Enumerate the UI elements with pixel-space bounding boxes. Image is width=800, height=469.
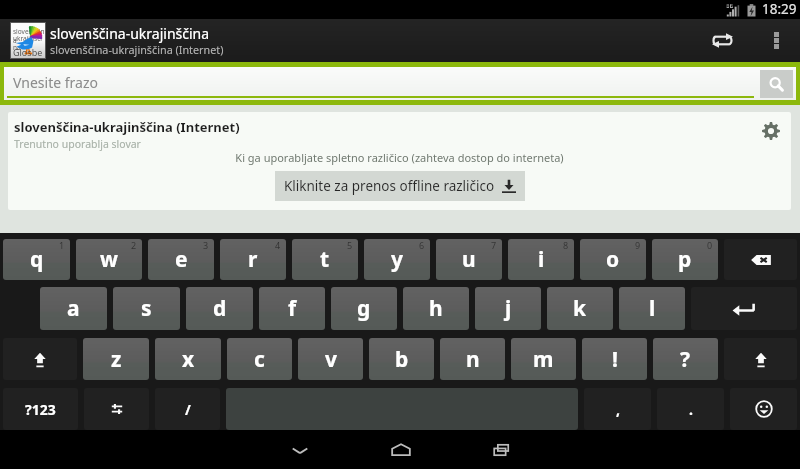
staticText: , xyxy=(616,400,620,419)
button[interactable]: Recent apps xyxy=(451,430,552,469)
button[interactable]: b xyxy=(369,338,434,380)
staticText: e xyxy=(175,245,188,274)
staticText: slovenščina-ukrajinščina (Internet) xyxy=(50,42,224,57)
button[interactable]: Keyboard settings xyxy=(84,388,149,430)
button[interactable]: Home xyxy=(350,430,451,469)
button[interactable]: r xyxy=(220,239,286,280)
staticText: u xyxy=(462,245,476,274)
staticText: t xyxy=(320,245,330,274)
button[interactable]: f xyxy=(259,287,325,330)
button[interactable]: m xyxy=(511,338,576,380)
button[interactable]: u xyxy=(436,239,502,280)
button[interactable]: Dictionary settings xyxy=(751,112,791,150)
staticText: ?123 xyxy=(25,400,56,419)
button[interactable]: i xyxy=(508,239,574,280)
button[interactable]: Vnesite frazo xyxy=(4,67,760,100)
staticText: 1 xyxy=(59,239,65,251)
staticText: 18:29 xyxy=(762,0,797,18)
staticText: 3 xyxy=(203,239,209,251)
staticText: j xyxy=(505,294,512,323)
button[interactable]: w xyxy=(76,239,142,280)
staticText: g xyxy=(357,294,371,323)
staticText: 6 xyxy=(419,239,425,251)
staticText: d xyxy=(213,294,227,323)
button[interactable]: ?123 xyxy=(3,388,78,430)
staticText: f xyxy=(288,294,297,323)
button[interactable]: Swap languages xyxy=(691,19,753,62)
staticText: ? xyxy=(680,345,691,374)
button[interactable]: Search xyxy=(760,70,793,98)
staticText: r xyxy=(248,245,258,274)
staticText: ! xyxy=(612,345,618,374)
button[interactable]: e xyxy=(148,239,214,280)
button[interactable]: g xyxy=(331,287,397,330)
staticText: a xyxy=(67,294,80,323)
button[interactable]: Glosbe app icon xyxy=(11,23,45,58)
button[interactable]: p xyxy=(652,239,718,280)
staticText: Glosbe xyxy=(13,46,43,58)
staticText: slovenščina-ukrajinščina (Internet) xyxy=(14,118,240,136)
staticText: k xyxy=(573,294,587,323)
staticText: / xyxy=(185,400,191,419)
staticText: q xyxy=(30,245,44,274)
staticText: o xyxy=(606,245,620,274)
staticText: slovenščina xyxy=(13,27,45,45)
button[interactable]: j xyxy=(475,287,541,330)
staticText: y xyxy=(391,245,403,274)
staticText: 5 xyxy=(347,239,353,251)
staticText: 7 xyxy=(491,239,497,251)
staticText: v xyxy=(325,345,337,374)
button[interactable]: c xyxy=(227,338,292,380)
staticText: Vnesite frazo xyxy=(13,73,98,92)
staticText: slovenščina-ukrajinščina xyxy=(50,24,210,43)
button[interactable]: , xyxy=(584,388,651,430)
button[interactable]: ? xyxy=(653,338,718,380)
button[interactable]: ! xyxy=(582,338,647,380)
button[interactable]: Hide keyboard xyxy=(249,430,350,469)
button[interactable]: s xyxy=(113,287,180,330)
staticText: 8 xyxy=(563,239,569,251)
staticText: Ki ga uporabljate spletno različico (zah… xyxy=(235,150,564,165)
staticText: i xyxy=(538,245,545,274)
button[interactable]: . xyxy=(657,388,724,430)
staticText: h xyxy=(429,294,443,323)
button[interactable]: t xyxy=(292,239,358,280)
staticText: Trenutno uporablja slovar xyxy=(14,137,141,151)
button[interactable]: Enter xyxy=(691,287,797,330)
button[interactable]: Shift xyxy=(3,338,77,380)
staticText: m xyxy=(533,345,554,374)
button[interactable]: More options xyxy=(753,19,800,62)
staticText: 4 xyxy=(275,239,281,251)
button[interactable]: v xyxy=(298,338,363,380)
staticText: c xyxy=(254,345,265,374)
staticText: x xyxy=(182,345,195,374)
staticText: s xyxy=(141,294,152,323)
button[interactable]: h xyxy=(403,287,469,330)
button[interactable]: / xyxy=(155,388,220,430)
staticText: 0 xyxy=(707,239,713,251)
staticText: . xyxy=(689,400,693,419)
button[interactable]: q xyxy=(3,239,70,280)
button[interactable]: k xyxy=(547,287,613,330)
button[interactable]: Emoji xyxy=(730,388,797,430)
staticText: p xyxy=(678,245,692,274)
staticText: z xyxy=(111,345,122,374)
staticText: 2 xyxy=(131,239,137,251)
button[interactable]: Backspace xyxy=(724,239,797,280)
button[interactable]: x xyxy=(155,338,221,380)
button[interactable]: Kliknite za prenos offline različico xyxy=(275,171,525,201)
staticText: n xyxy=(466,345,480,374)
button[interactable]: z xyxy=(83,338,149,380)
button[interactable]: Shift xyxy=(724,338,797,380)
button[interactable]: n xyxy=(440,338,505,380)
button[interactable]: a xyxy=(40,287,107,330)
button[interactable]: o xyxy=(580,239,646,280)
button[interactable]: slovenščina-ukrajinščina (Internet) xyxy=(8,112,791,210)
staticText: b xyxy=(395,345,409,374)
button[interactable]: y xyxy=(364,239,430,280)
button[interactable]: d xyxy=(186,287,253,330)
staticText: Kliknite za prenos offline različico xyxy=(284,177,495,195)
staticText: l xyxy=(649,294,656,323)
button[interactable]: l xyxy=(619,287,685,330)
